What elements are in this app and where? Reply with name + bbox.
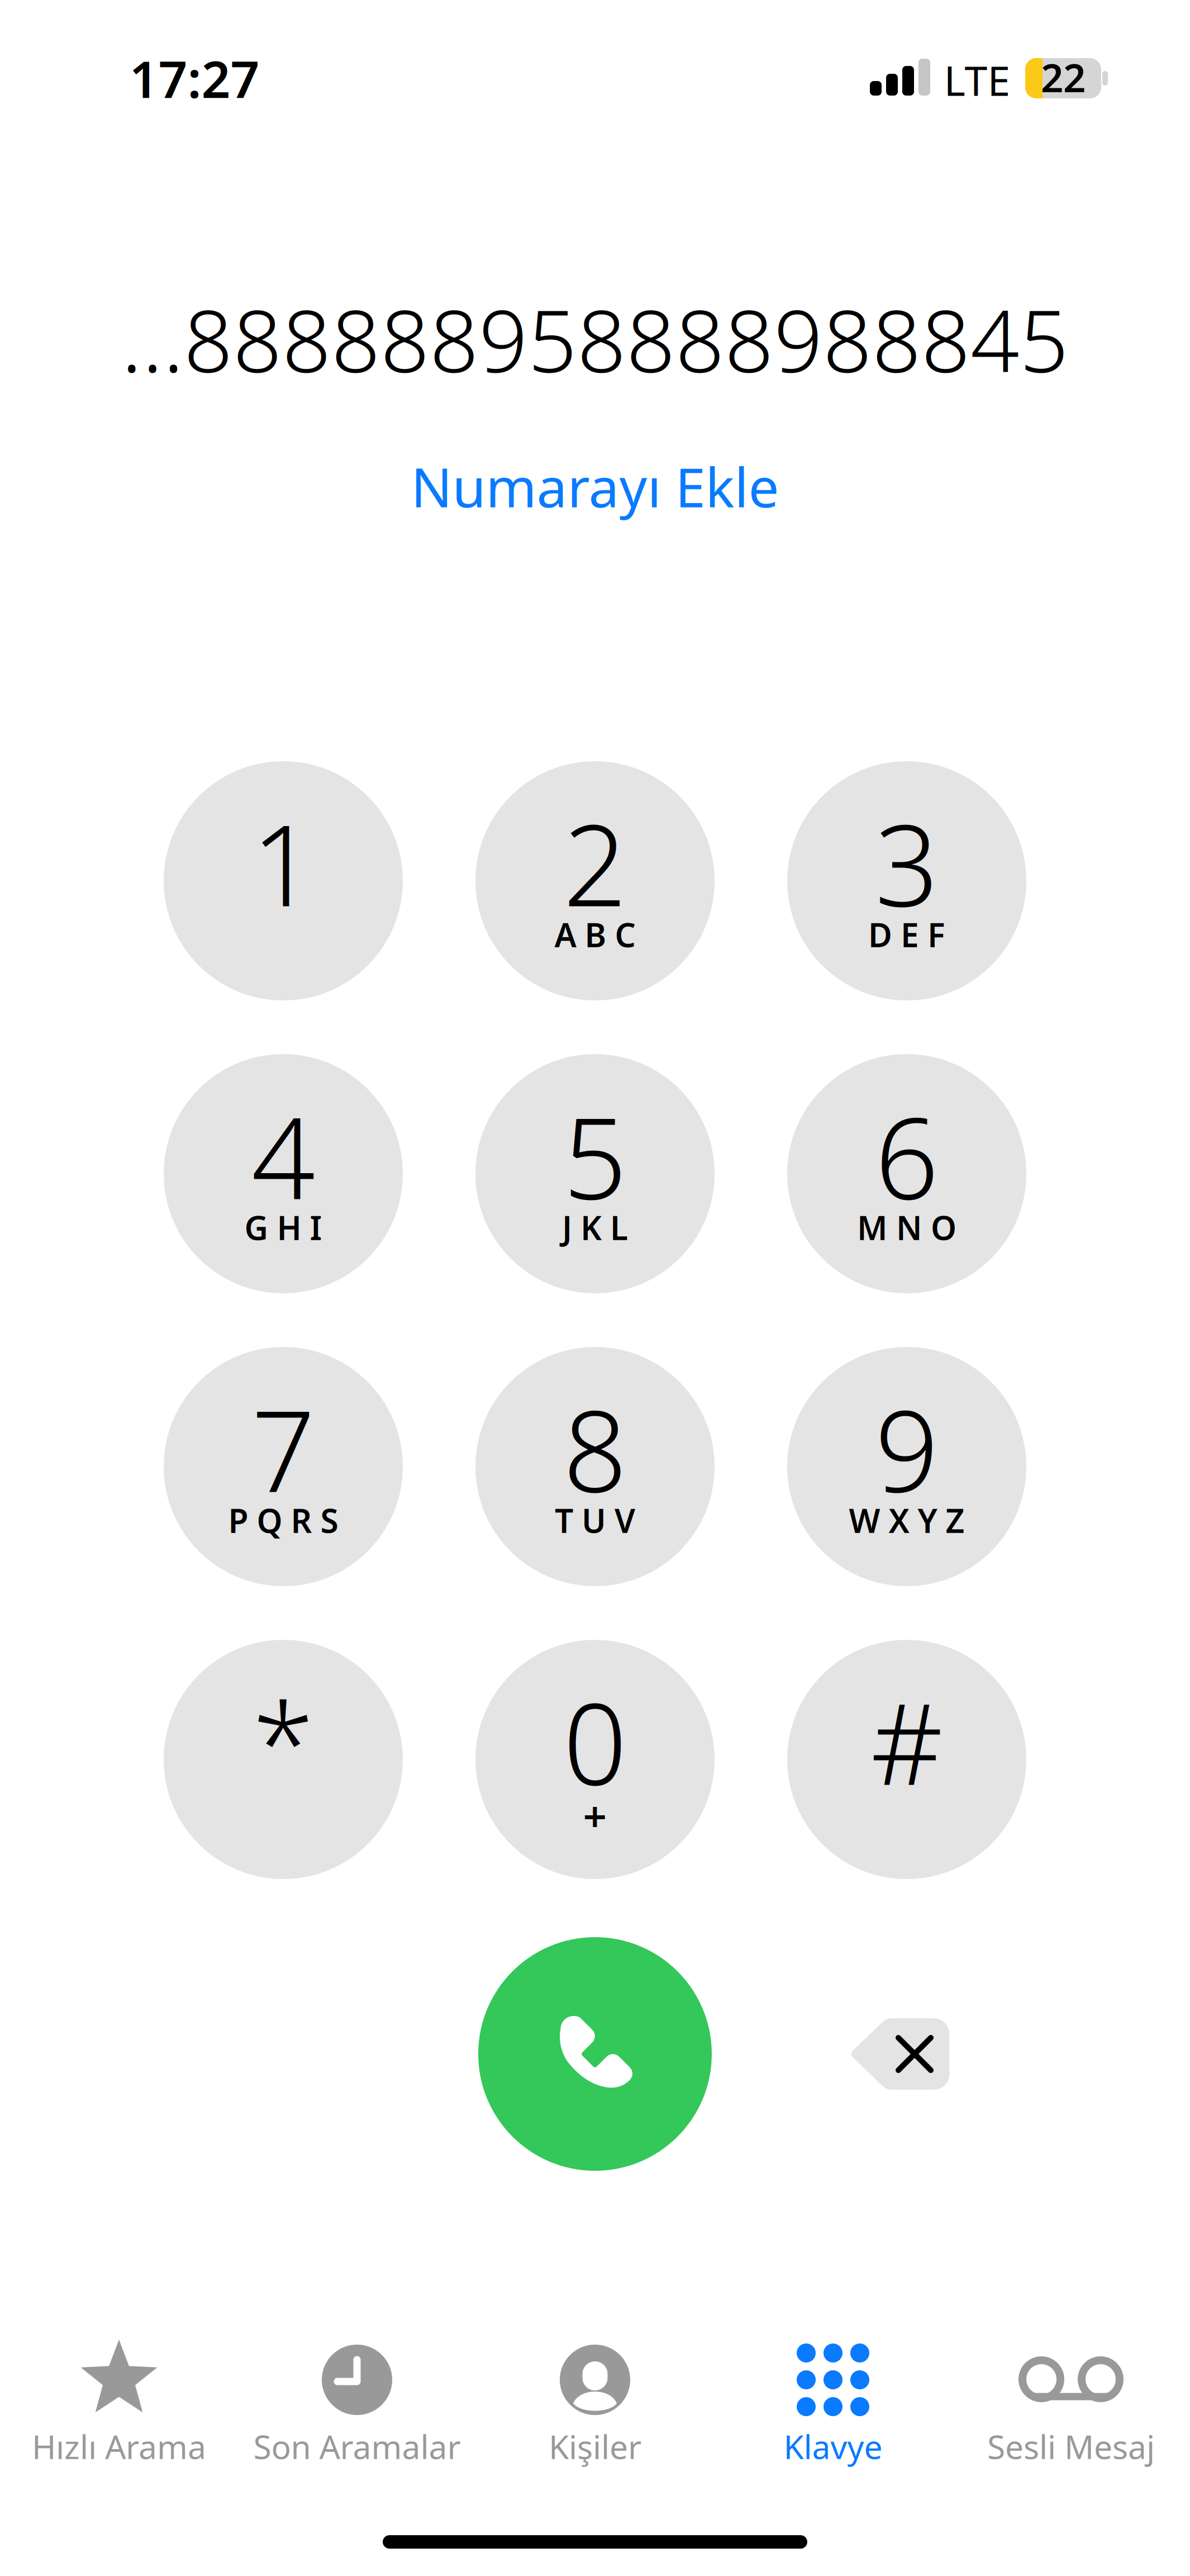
staticText: Kişiler (549, 2425, 641, 2468)
button[interactable]: * (164, 1640, 403, 1879)
staticText: 4 (251, 1082, 315, 1230)
staticText: Sesli Mesaj (987, 2425, 1155, 2468)
staticText: 2 (563, 789, 627, 937)
staticText: # (871, 1667, 943, 1816)
button[interactable]: Sesli Mesaj (952, 2325, 1190, 2470)
staticText: G H I (244, 1206, 322, 1249)
staticText: LTE (944, 53, 1010, 107)
button[interactable]: 2 (475, 761, 715, 1000)
staticText: P Q R S (228, 1498, 338, 1542)
staticText: 3 (875, 789, 939, 937)
staticText: Son Aramalar (253, 2425, 461, 2468)
button[interactable]: Kişiler (476, 2325, 714, 2470)
staticText: Klavye (784, 2425, 882, 2468)
button[interactable]: Son Aramalar (238, 2325, 476, 2470)
staticText: D E F (868, 913, 945, 956)
staticText: W X Y Z (849, 1498, 965, 1542)
staticText: + (583, 1788, 607, 1843)
button[interactable]: 5 (475, 1054, 715, 1293)
button[interactable]: 0 (475, 1640, 715, 1879)
button[interactable]: 9 (787, 1347, 1026, 1586)
staticText: 9 (875, 1374, 939, 1523)
button[interactable]: Delete (851, 2018, 949, 2090)
staticText: 6 (875, 1082, 939, 1230)
button[interactable]: 7 (164, 1347, 403, 1586)
button[interactable]: # (787, 1640, 1026, 1879)
staticText: Hızlı Arama (32, 2425, 206, 2468)
staticText: A B C (554, 913, 636, 956)
button[interactable]: 6 (787, 1054, 1026, 1293)
staticText: M N O (857, 1206, 956, 1249)
button[interactable]: Klavye (714, 2325, 952, 2470)
staticText: …888888958888988845 (121, 282, 1069, 396)
button[interactable]: 8 (475, 1347, 715, 1586)
staticText: 8 (563, 1374, 627, 1523)
staticText: 7 (251, 1374, 315, 1523)
button[interactable]: Numarayı Ekle (344, 444, 846, 528)
staticText: 22 (1041, 51, 1086, 103)
staticText: Numarayı Ekle (411, 450, 779, 522)
staticText: 5 (563, 1082, 627, 1230)
button[interactable]: Call (478, 1937, 712, 2171)
staticText: 0 (563, 1667, 627, 1816)
button[interactable]: 3 (787, 761, 1026, 1000)
staticText: T U V (555, 1498, 635, 1542)
staticText: * (253, 1667, 314, 1816)
button[interactable]: 4 (164, 1054, 403, 1293)
staticText: J K L (562, 1206, 628, 1249)
staticText: 1 (251, 789, 315, 937)
button[interactable]: Hızlı Arama (0, 2325, 238, 2470)
staticText: 17:27 (129, 45, 260, 112)
button[interactable]: 1 (164, 761, 403, 1000)
